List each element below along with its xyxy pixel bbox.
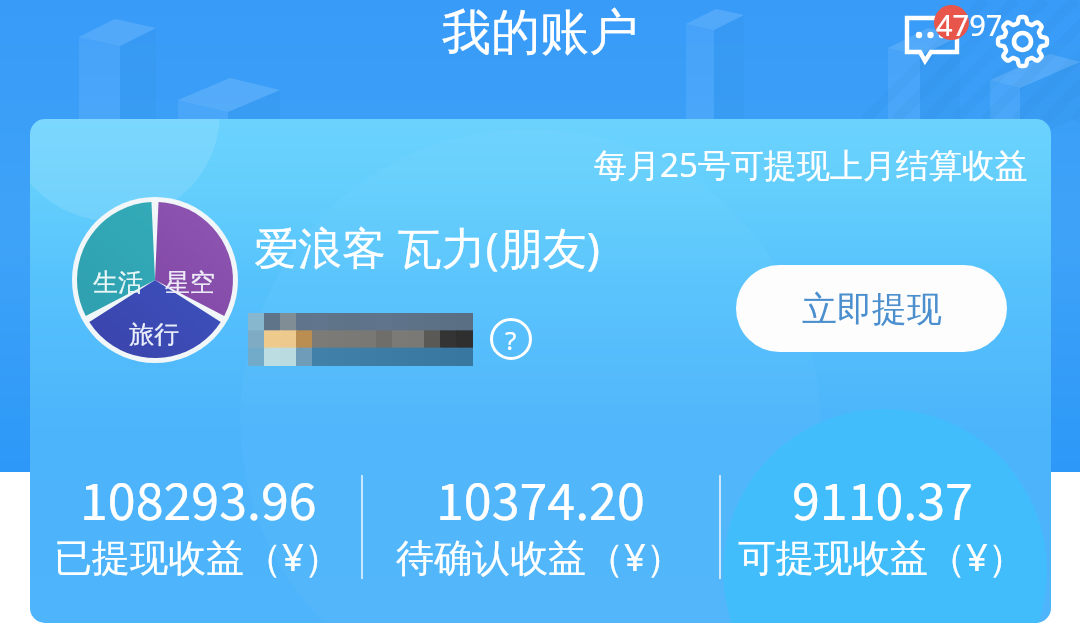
staticText: 108293.96 xyxy=(80,463,317,543)
staticText: 4797 xyxy=(936,5,1003,44)
button[interactable]: Settings xyxy=(996,15,1049,68)
staticText: 星空 xyxy=(165,267,215,298)
staticText: 待确认收益（¥） xyxy=(396,530,684,582)
staticText: 可提现收益（¥） xyxy=(738,530,1026,582)
staticText: 爱浪客 瓦力(朋友) xyxy=(254,217,600,277)
staticText: 9110.37 xyxy=(792,463,973,543)
staticText: 10374.20 xyxy=(436,463,645,543)
staticText: 生活 xyxy=(93,267,143,298)
staticText: 每月25号可提现上月结算收益 xyxy=(594,142,1028,187)
staticText: 我的账户 xyxy=(442,2,638,64)
staticText: 已提现收益（¥） xyxy=(54,530,342,582)
button[interactable]: Messages xyxy=(900,10,964,62)
staticText: 立即提现 xyxy=(802,287,942,331)
staticText: ? xyxy=(505,322,517,357)
button[interactable]: 立即提现 xyxy=(736,265,1007,352)
staticText: 旅行 xyxy=(129,319,179,350)
button[interactable]: Help xyxy=(490,318,532,360)
